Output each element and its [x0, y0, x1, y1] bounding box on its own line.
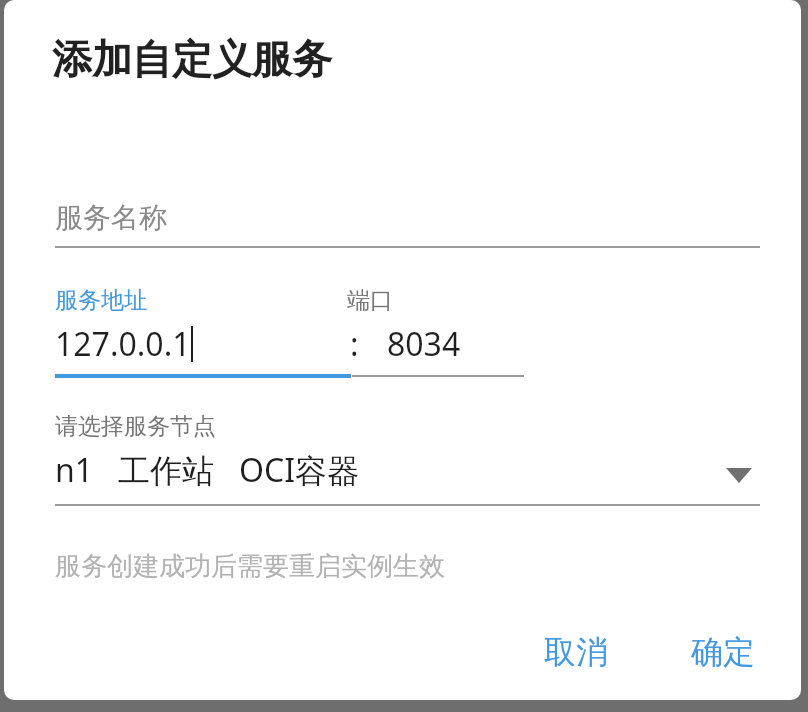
button[interactable]: 取消 [530, 622, 622, 682]
staticText: 确定 [691, 632, 755, 672]
staticText: 添加自定义服务 [52, 34, 332, 84]
staticText: 服务名称 [55, 200, 167, 235]
staticText: : [350, 322, 359, 366]
button[interactable]: 选择服务节点 [51, 410, 760, 504]
staticText: 端口 [347, 286, 393, 315]
staticText: n1 工作站 OCI容器 [55, 448, 360, 492]
staticText: 8034 [387, 322, 461, 366]
button[interactable]: 服务地址 [51, 284, 351, 376]
staticText: 取消 [544, 632, 608, 672]
staticText: 请选择服务节点 [55, 412, 216, 441]
staticText: 服务地址 [55, 286, 147, 315]
staticText: 服务创建成功后需要重启实例生效 [55, 550, 445, 583]
staticText: 127.0.0.1 [55, 322, 191, 366]
button[interactable]: 端口 [344, 284, 524, 376]
button[interactable]: 服务名称 [51, 188, 760, 248]
button[interactable]: 确定 [677, 622, 769, 682]
